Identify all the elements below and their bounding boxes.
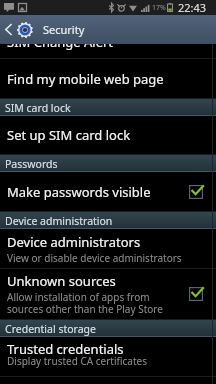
staticText: Make passwords visible — [7, 183, 151, 201]
button[interactable]: Device administrators — [0, 229, 216, 269]
staticText: Allow installation of apps from sources … — [7, 290, 163, 316]
staticText: Device administrators — [7, 233, 141, 251]
staticText: Find my mobile web page — [7, 70, 164, 88]
button[interactable]: Back — [0, 15, 17, 44]
staticText: Passwords — [5, 157, 58, 171]
staticText: SIM card lock — [5, 101, 71, 115]
staticText: 22:43 — [178, 0, 207, 15]
staticText: Trusted credentials — [7, 340, 124, 358]
button[interactable]: Make passwords visible — [0, 172, 216, 212]
staticText: Security — [43, 22, 85, 37]
button[interactable]: Trusted credentials — [0, 337, 216, 377]
button[interactable]: SIM Change Alert — [0, 20, 216, 59]
staticText: SIM Change Alert — [7, 33, 114, 51]
staticText: Unknown sources — [7, 272, 116, 290]
staticText: View or disable device administrators — [7, 251, 182, 265]
staticText: Display trusted CA certificates — [7, 354, 147, 368]
staticText: Credential storage — [5, 322, 96, 336]
staticText: Device administration — [5, 214, 113, 228]
button[interactable]: Set up SIM card lock — [0, 116, 216, 155]
staticText: 17% — [152, 3, 166, 13]
staticText: Set up SIM card lock — [7, 126, 131, 144]
button[interactable]: Find my mobile web page — [0, 59, 216, 99]
button[interactable]: Unknown sources — [0, 269, 216, 320]
